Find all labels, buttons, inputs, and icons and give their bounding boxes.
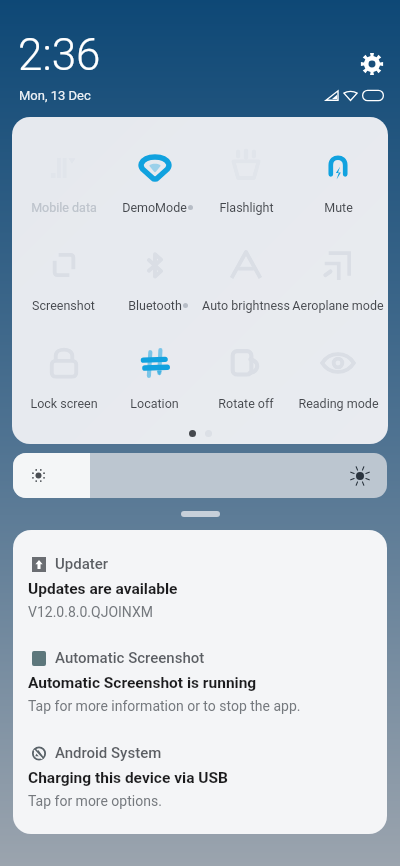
staticText: DemoMode <box>122 200 187 215</box>
staticText: Flashlight <box>219 200 274 215</box>
staticText: Automatic Screenshot <box>55 649 205 667</box>
staticText: Screenshot <box>32 298 95 313</box>
staticText: Mon, 13 Dec <box>19 88 91 103</box>
button[interactable]: Settings <box>360 52 384 76</box>
staticText: Bluetooth <box>128 298 182 313</box>
staticText: Charging this device via USB <box>28 769 228 787</box>
button[interactable]: Android System <box>13 743 387 815</box>
staticText: Tap for more options. <box>28 793 162 809</box>
staticText: Auto brightness <box>202 298 290 313</box>
staticText: Updates are available <box>28 580 178 598</box>
staticText: 2:36 <box>18 29 101 81</box>
staticText: Updater <box>55 555 109 573</box>
staticText: Automatic Screenshot is running <box>28 674 257 692</box>
staticText: Location <box>130 396 179 411</box>
staticText: Lock screen <box>30 396 98 411</box>
staticText: Rotate off <box>218 396 274 411</box>
staticText: V12.0.8.0.QJOINXM <box>28 604 153 620</box>
button[interactable]: Brightness <box>13 453 387 498</box>
staticText: Mute <box>324 200 353 215</box>
staticText: Android System <box>55 744 162 762</box>
button[interactable]: Updater <box>13 554 387 626</box>
button[interactable]: Automatic Screenshot <box>13 648 387 720</box>
staticText: Aeroplane mode <box>292 298 384 313</box>
staticText: Mobile data <box>31 200 97 215</box>
staticText: Tap for more information or to stop the … <box>28 698 301 714</box>
staticText: Reading mode <box>298 396 379 411</box>
